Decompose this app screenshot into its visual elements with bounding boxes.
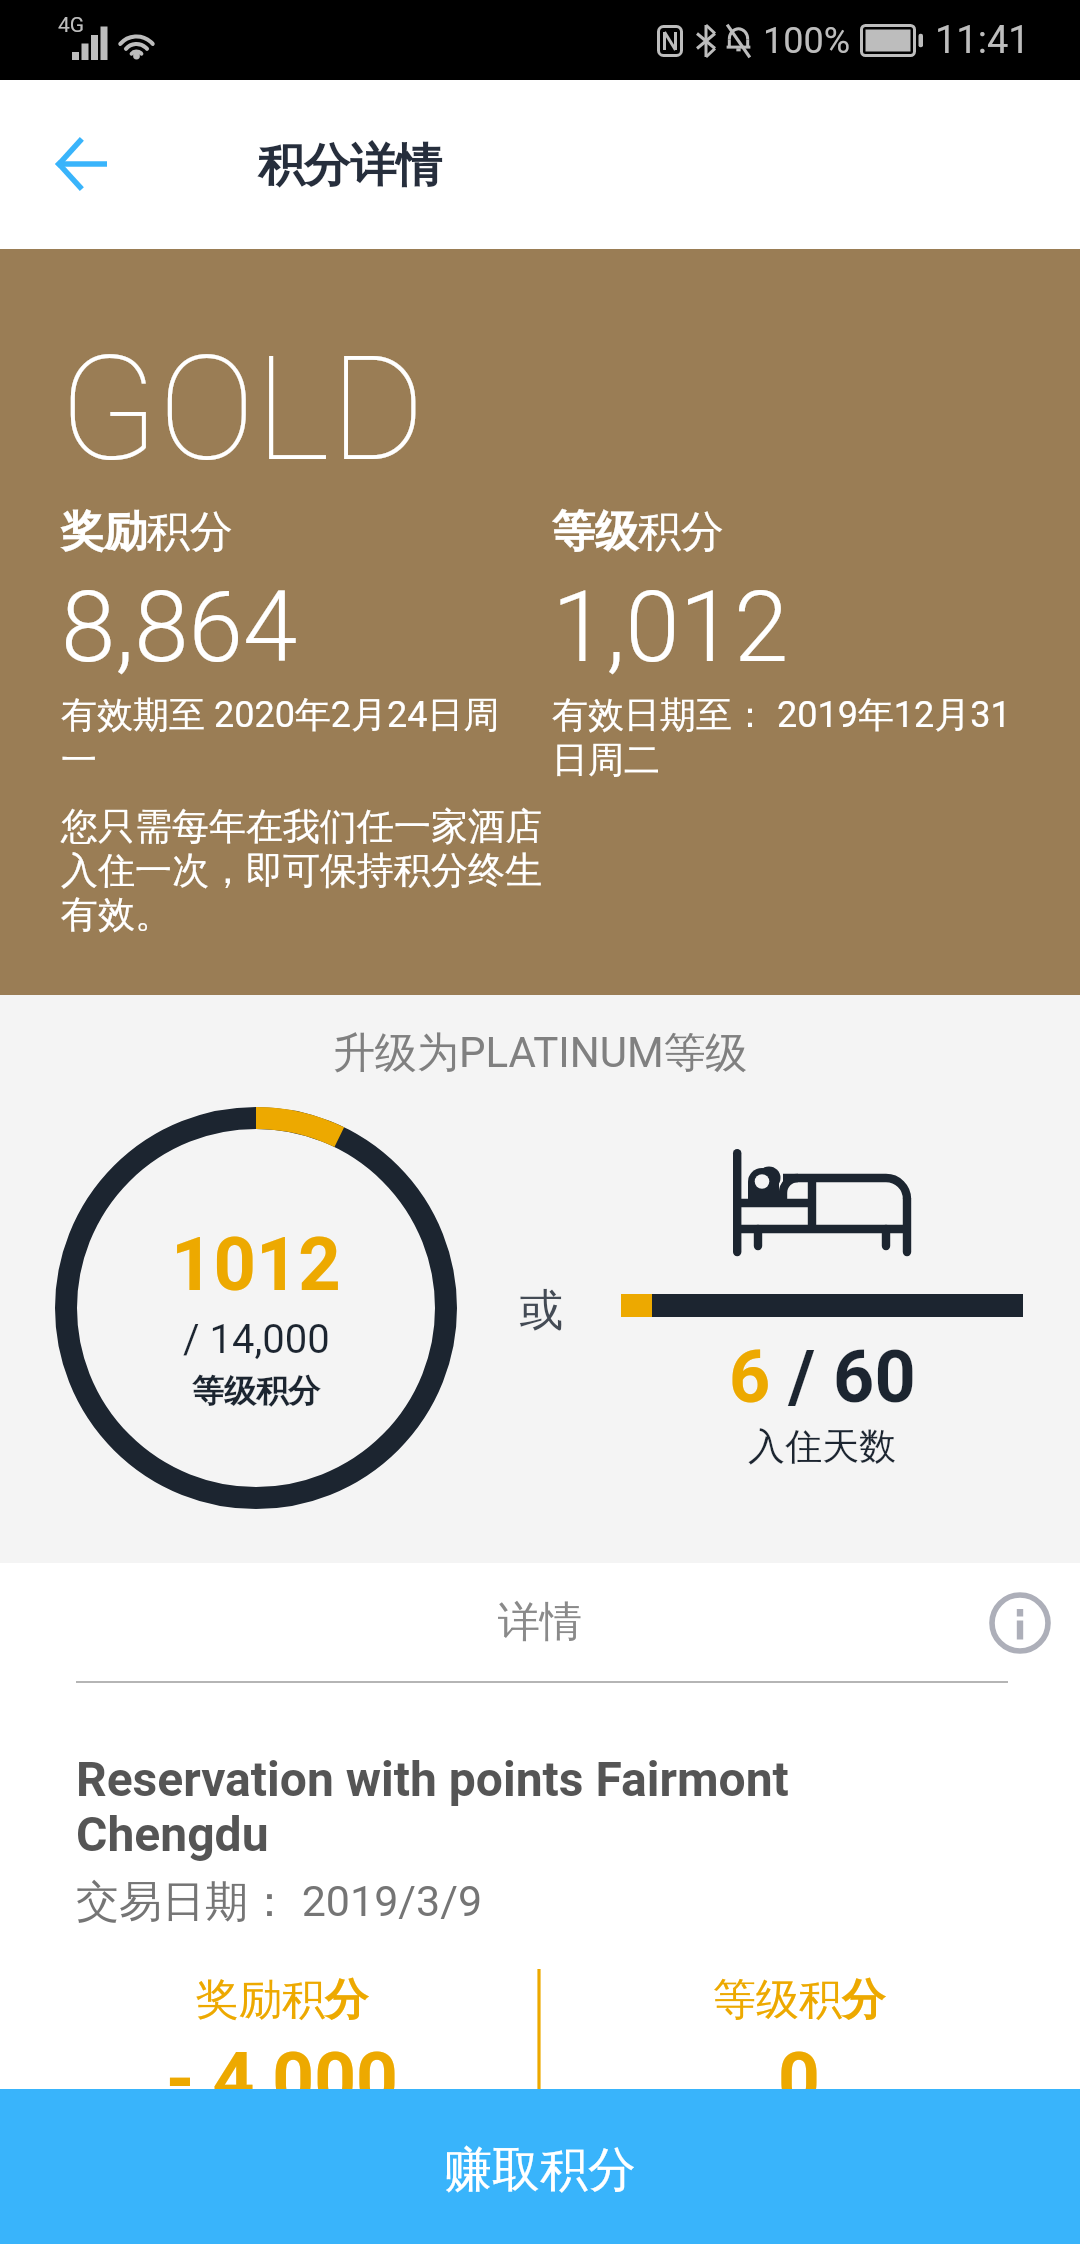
- staticText: 详情: [498, 1596, 582, 1649]
- staticText: / 14,000: [183, 1316, 330, 1363]
- staticText: 奖励积分: [196, 1973, 368, 2027]
- staticText: 100%: [763, 20, 851, 62]
- staticText: 升级为PLATINUM等级: [333, 1027, 748, 1080]
- staticText: 奖励积分: [61, 505, 233, 559]
- staticText: 或: [519, 1283, 563, 1338]
- staticText: 赚取积分: [444, 2140, 636, 2200]
- staticText: 6 / 60: [729, 1335, 916, 1419]
- staticText: 0: [778, 2036, 820, 2122]
- staticText: 1012: [171, 1221, 341, 1308]
- staticText: 4G: [58, 13, 85, 38]
- staticText: GOLD: [59, 324, 425, 494]
- staticText: 1,012: [552, 570, 789, 685]
- staticText: 8,864: [61, 570, 298, 685]
- staticText: - 4,000: [166, 2036, 398, 2122]
- staticText: 交易日期： 2019/3/9: [76, 1875, 483, 1929]
- button[interactable]: 赚取积分: [0, 2089, 1080, 2244]
- staticText: 等级积分: [713, 1973, 885, 2027]
- staticText: 等级积分: [192, 1371, 320, 1411]
- button[interactable]: Information: [975, 1578, 1065, 1668]
- button[interactable]: Back: [34, 116, 130, 212]
- staticText: 11:41: [935, 18, 1030, 63]
- staticText: 您只需每年在我们任一家酒店入住一次，即可保持积分终生有效。: [61, 803, 553, 938]
- staticText: 等级积分: [552, 505, 724, 559]
- staticText: 积分详情: [258, 137, 442, 195]
- staticText: 有效期至 2020年2月24日周一: [61, 692, 531, 782]
- button[interactable]: Reservation with points Fairmont Chengdu: [0, 1695, 1080, 2089]
- staticText: 有效日期至： 2019年12月31日周二: [552, 692, 1024, 782]
- staticText: Reservation with points Fairmont Chengdu: [76, 1751, 836, 1862]
- staticText: 入住天数: [748, 1423, 896, 1470]
